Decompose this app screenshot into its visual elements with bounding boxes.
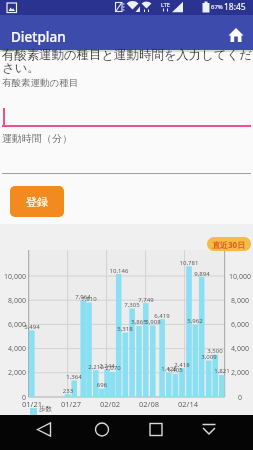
staticText: 0 <box>228 393 252 403</box>
staticText: 5,494 <box>19 323 45 331</box>
staticText: 直近30日 <box>212 239 246 250</box>
staticText: 有酸素運動の種目と運動時間を入力してくだ <box>2 47 252 63</box>
staticText: 1,821 <box>209 367 235 375</box>
button[interactable] <box>2 95 251 127</box>
staticText: Dietplan <box>11 28 66 46</box>
staticText: 2,000 <box>228 368 252 378</box>
staticText: 02/08 <box>134 399 164 409</box>
staticText: 8,000 <box>0 296 26 306</box>
staticText: 5,865 <box>126 318 152 326</box>
staticText: 2,000 <box>0 368 26 378</box>
staticText: 67% <box>211 3 223 11</box>
staticText: 01/21 <box>17 399 47 409</box>
staticText: 10,781 <box>176 259 202 267</box>
staticText: LTE <box>161 1 170 8</box>
staticText: 01/27 <box>56 399 86 409</box>
staticText: 6,000 <box>0 320 26 330</box>
staticText: 3,500 <box>202 347 228 355</box>
staticText: 有酸素運動の種目 <box>2 77 79 89</box>
button[interactable] <box>196 417 222 443</box>
staticText: 運動時間（分） <box>2 132 72 145</box>
staticText: 10,146 <box>106 267 132 275</box>
staticText: 2,244 <box>94 362 120 370</box>
staticText: 18:45 <box>224 1 246 13</box>
button[interactable] <box>89 417 115 443</box>
button[interactable] <box>226 25 248 47</box>
staticText: 7,749 <box>133 296 159 304</box>
staticText: 歩数 <box>39 405 52 413</box>
staticText: 02/14 <box>173 399 203 409</box>
staticText: 6,419 <box>149 312 175 320</box>
button[interactable] <box>2 145 251 174</box>
button[interactable] <box>31 417 57 443</box>
staticText: 696 <box>89 381 115 389</box>
staticText: 10,000 <box>228 272 252 282</box>
staticText: 10,000 <box>0 272 26 282</box>
staticText: 3,009 <box>196 353 222 361</box>
button[interactable] <box>143 417 169 443</box>
staticText: 8,000 <box>228 296 252 306</box>
staticText: 2,418 <box>169 361 195 369</box>
staticText: 1,364 <box>61 373 87 381</box>
staticText: 0 <box>0 393 26 403</box>
staticText: 7,810 <box>76 295 102 303</box>
button[interactable]: 登録 <box>10 186 64 217</box>
staticText: 2,212 <box>83 363 109 371</box>
staticText: 5,962 <box>182 317 208 325</box>
staticText: 5,318 <box>112 325 138 333</box>
staticText: 7,305 <box>119 301 145 309</box>
staticText: 4,000 <box>228 344 252 354</box>
staticText: 1,428 <box>156 365 182 373</box>
staticText: 7,964 <box>70 293 96 301</box>
staticText: 6,000 <box>228 320 252 330</box>
staticText: 登録 <box>26 195 48 209</box>
staticText: 1,405 <box>162 366 188 374</box>
staticText: さい。 <box>2 60 40 76</box>
staticText: 02/02 <box>95 399 125 409</box>
staticText: 5,908 <box>140 318 166 326</box>
staticText: 2,070 <box>100 364 126 372</box>
staticText: 4,000 <box>0 344 26 354</box>
staticText: 9,894 <box>189 270 215 278</box>
staticText: 233 <box>55 387 81 395</box>
